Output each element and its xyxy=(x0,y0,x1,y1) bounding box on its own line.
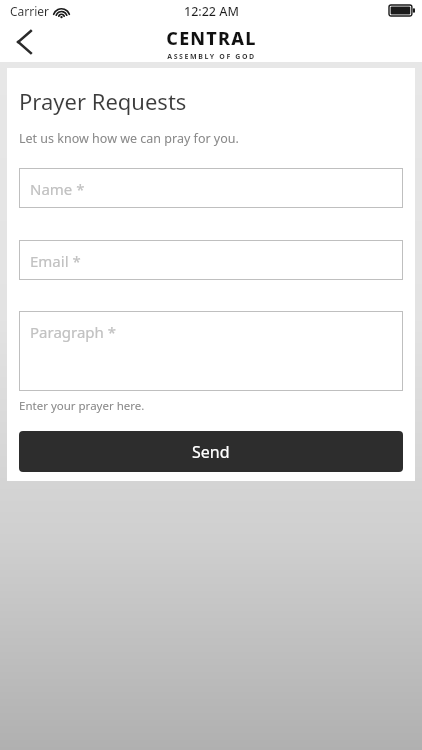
staticText: Paragraph * xyxy=(30,322,116,342)
staticText: 12:22 AM xyxy=(184,3,239,20)
button[interactable]: Paragraph * xyxy=(19,311,403,391)
staticText: ASSEMBLY OF GOD xyxy=(167,52,256,62)
staticText: Enter your prayer here. xyxy=(19,398,145,414)
staticText: Let us know how we can pray for you. xyxy=(19,130,239,147)
button[interactable]: Email * xyxy=(19,240,403,280)
button[interactable]: Name * xyxy=(19,168,403,208)
staticText: Prayer Requests xyxy=(19,86,187,116)
button[interactable]: Back xyxy=(0,22,48,62)
staticText: Email * xyxy=(30,251,81,271)
staticText: Carrier xyxy=(10,3,50,19)
button[interactable]: Send xyxy=(19,431,403,472)
staticText: Name * xyxy=(30,179,85,199)
staticText: CENTRAL xyxy=(166,26,257,51)
staticText: Send xyxy=(192,441,230,463)
